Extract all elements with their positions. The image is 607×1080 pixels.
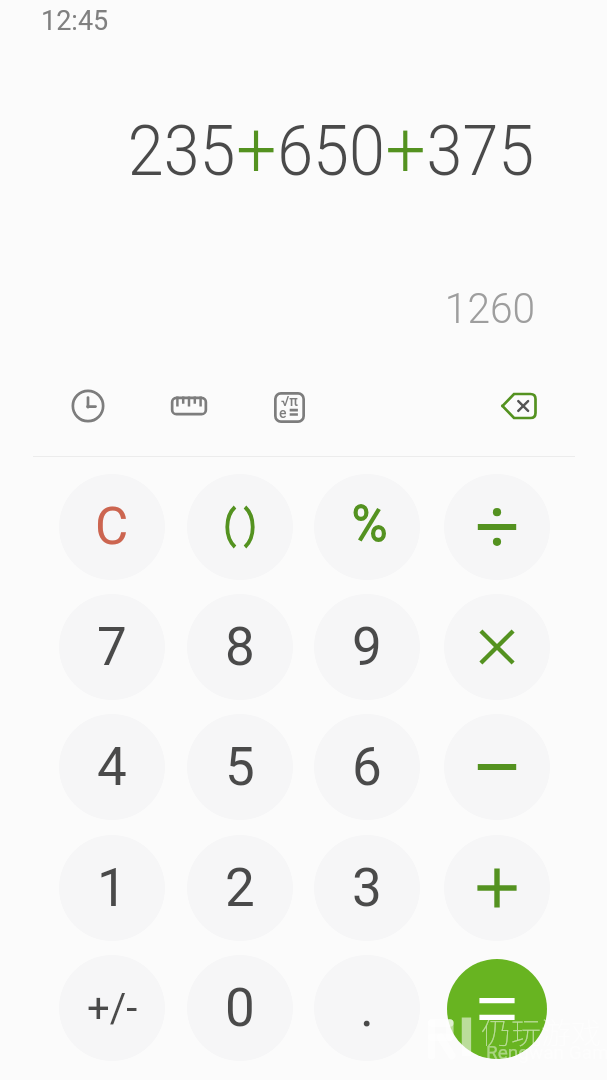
button[interactable]: Divide xyxy=(444,474,550,580)
button[interactable]: 1 xyxy=(59,835,165,941)
button[interactable]: History xyxy=(60,378,116,434)
staticText: 3 xyxy=(352,857,382,919)
button[interactable]: Minus xyxy=(444,714,550,820)
button[interactable]: Percent xyxy=(314,474,420,580)
button[interactable]: 8 xyxy=(187,594,293,700)
staticText: Rengwan Games xyxy=(486,1041,607,1063)
staticText: 9 xyxy=(352,616,382,678)
staticText: 650 xyxy=(277,109,386,192)
staticText: 7 xyxy=(97,616,127,678)
staticText: 仍玩游戏 xyxy=(481,1009,601,1052)
button[interactable]: 5 xyxy=(187,714,293,820)
button[interactable]: Unit converter xyxy=(161,378,217,434)
staticText: C xyxy=(95,497,129,557)
button[interactable]: Plus xyxy=(444,835,550,941)
staticText: 6 xyxy=(352,736,382,798)
button[interactable]: Equals xyxy=(447,959,547,1059)
button[interactable]: 4 xyxy=(59,714,165,820)
button[interactable]: 6 xyxy=(314,714,420,820)
staticText: + xyxy=(236,105,277,196)
staticText: 12:45 xyxy=(41,5,109,37)
button[interactable]: Multiply xyxy=(444,594,550,700)
staticText: 235 xyxy=(128,109,236,192)
button[interactable]: . xyxy=(314,955,420,1061)
button[interactable]: Parentheses xyxy=(187,474,293,580)
staticText: 4 xyxy=(97,736,127,798)
button[interactable]: Scientific calculator xyxy=(261,379,317,435)
button[interactable]: Backspace xyxy=(491,378,547,434)
button[interactable]: +/- xyxy=(59,955,165,1061)
button[interactable]: 0 xyxy=(187,955,293,1061)
button[interactable]: 9 xyxy=(314,594,420,700)
staticText: √π xyxy=(281,393,298,409)
staticText: 1260 xyxy=(444,283,535,333)
staticText: 5 xyxy=(225,736,255,798)
staticText: 8 xyxy=(225,616,255,678)
staticText: + xyxy=(386,105,427,196)
staticText: . xyxy=(360,977,374,1039)
button[interactable]: 2 xyxy=(187,835,293,941)
staticText: e xyxy=(279,405,287,421)
staticText: 1 xyxy=(97,857,127,919)
staticText: 375 xyxy=(427,109,535,192)
staticText: 2 xyxy=(225,857,255,919)
button[interactable]: C xyxy=(59,474,165,580)
staticText: 0 xyxy=(225,977,255,1039)
staticText: +/- xyxy=(87,985,138,1032)
button[interactable]: 7 xyxy=(59,594,165,700)
button[interactable]: 3 xyxy=(314,835,420,941)
